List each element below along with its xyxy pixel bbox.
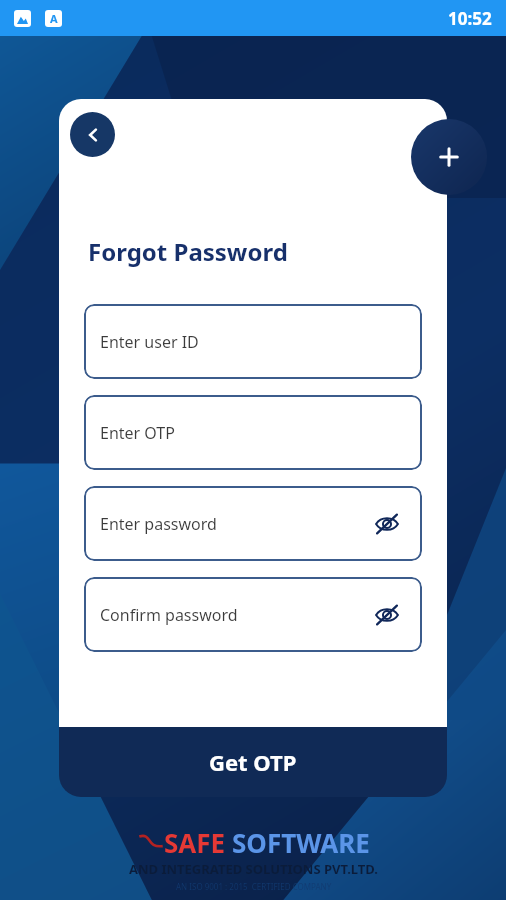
button[interactable]: Toggle password visibility xyxy=(370,507,404,541)
staticText: Enter user ID xyxy=(100,331,199,353)
staticText: 10:52 xyxy=(448,7,492,30)
button[interactable]: Add xyxy=(411,119,487,195)
button[interactable]: Back xyxy=(70,112,115,157)
staticText: Enter OTP xyxy=(100,422,175,444)
staticText: SOFTWARE xyxy=(232,825,370,860)
button[interactable]: Confirm password xyxy=(84,577,422,652)
button[interactable]: Get OTP xyxy=(59,727,447,797)
button[interactable]: Enter OTP xyxy=(84,395,422,470)
staticText: AND INTEGRATED SOLUTIONS PVT.LTD. xyxy=(129,860,378,878)
staticText: A xyxy=(50,11,58,26)
staticText: Confirm password xyxy=(100,604,238,626)
staticText: AN ISO 9001 : 2015 CERTIFIED COMPANY xyxy=(176,881,332,892)
staticText: Forgot Password xyxy=(88,235,288,268)
staticText: Get OTP xyxy=(209,747,297,777)
button[interactable]: Enter password xyxy=(84,486,422,561)
button[interactable]: Toggle password visibility xyxy=(370,598,404,632)
button[interactable]: Enter user ID xyxy=(84,304,422,379)
staticText: Enter password xyxy=(100,513,217,535)
staticText: SAFE xyxy=(164,825,226,860)
